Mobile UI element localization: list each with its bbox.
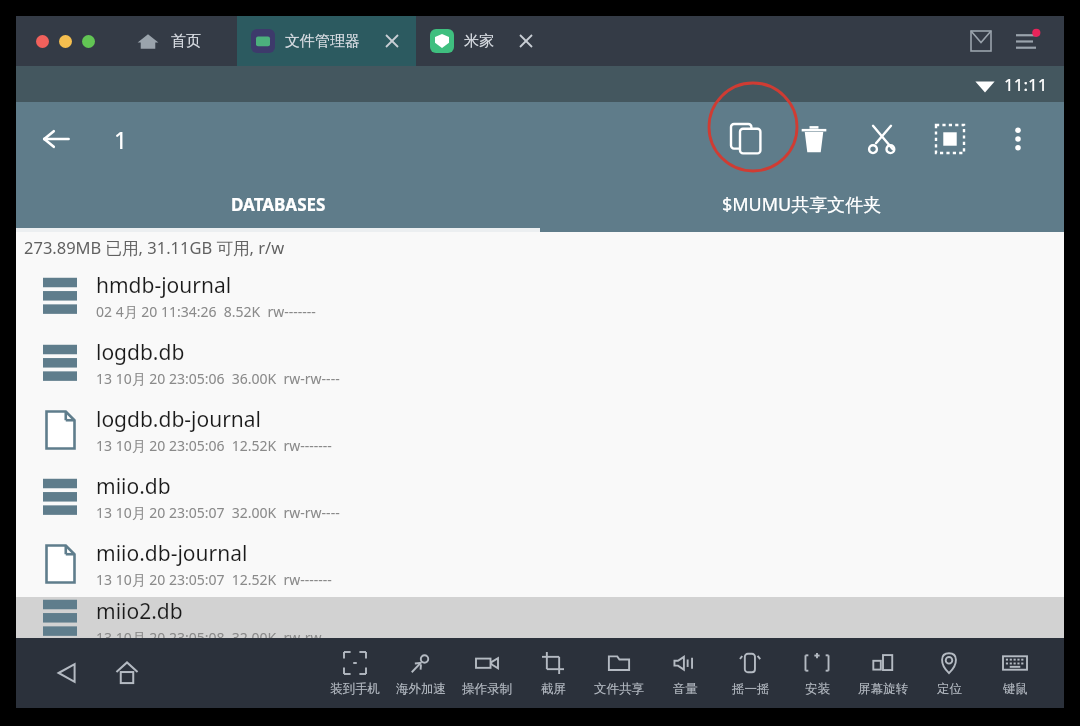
staticText: 13 10月 20 23:05:07 12.52K rw------- — [96, 570, 332, 589]
staticText: 02 4月 20 11:34:26 8.52K rw------- — [96, 302, 316, 321]
button[interactable]: Menu — [1010, 25, 1042, 57]
button[interactable]: 首页 — [127, 16, 209, 66]
button[interactable]: More options — [984, 105, 1052, 173]
button[interactable]: Back — [44, 650, 90, 696]
staticText: 键鼠 — [1003, 681, 1028, 697]
button[interactable]: Back — [30, 113, 82, 165]
button[interactable]: miio.db — [16, 463, 1064, 530]
staticText: $MUMU共享文件夹 — [722, 192, 882, 217]
staticText: 截屏 — [541, 681, 566, 697]
staticText: 首页 — [171, 32, 201, 51]
staticText: 13 10月 20 23:05:08 32.00K rw-rw---- — [96, 628, 340, 638]
staticText: 摇一摇 — [732, 681, 770, 697]
staticText: DATABASES — [231, 193, 326, 216]
button[interactable]: Cut — [848, 105, 916, 173]
staticText: 13 10月 20 23:05:06 12.52K rw------- — [96, 436, 332, 455]
button[interactable]: 文件管理器 — [237, 16, 416, 66]
staticText: hmdb-journal — [96, 271, 232, 300]
staticText: 屏幕旋转 — [858, 681, 908, 697]
button[interactable]: Close tab — [516, 31, 536, 51]
button[interactable]: $MUMU共享文件夹 — [540, 176, 1064, 232]
button[interactable] — [59, 35, 72, 48]
button[interactable]: 操作录制 — [454, 638, 520, 708]
button[interactable] — [36, 35, 49, 48]
staticText: 文件管理器 — [285, 32, 360, 51]
button[interactable]: Mail — [966, 26, 996, 56]
button[interactable] — [82, 35, 95, 48]
staticText: logdb.db-journal — [96, 405, 262, 434]
staticText: 米家 — [464, 32, 494, 51]
button[interactable]: 米家 — [416, 16, 550, 66]
staticText: 273.89MB 已用, 31.11GB 可用, r/w — [24, 236, 285, 259]
button[interactable]: 摇一摇 — [718, 638, 784, 708]
button[interactable]: logdb.db — [16, 329, 1064, 396]
staticText: 定位 — [937, 681, 962, 697]
button[interactable]: 音量 — [652, 638, 718, 708]
staticText: 1 — [114, 124, 128, 155]
button[interactable]: 键鼠 — [982, 638, 1048, 708]
staticText: 操作录制 — [462, 681, 512, 697]
staticText: 11:11 — [1004, 73, 1048, 96]
staticText: 13 10月 20 23:05:06 36.00K rw-rw---- — [96, 369, 340, 388]
staticText: 海外加速 — [396, 681, 446, 697]
button[interactable]: miio2.db — [16, 597, 1064, 638]
staticText: miio.db — [96, 472, 171, 501]
staticText: 13 10月 20 23:05:07 32.00K rw-rw---- — [96, 503, 340, 522]
button[interactable]: hmdb-journal — [16, 262, 1064, 329]
button[interactable]: 截屏 — [520, 638, 586, 708]
button[interactable]: 定位 — [916, 638, 982, 708]
button[interactable]: 安装 — [784, 638, 850, 708]
button[interactable]: 屏幕旋转 — [850, 638, 916, 708]
staticText: 音量 — [673, 681, 698, 697]
button[interactable]: DATABASES — [16, 176, 540, 232]
button[interactable]: logdb.db-journal — [16, 396, 1064, 463]
button[interactable]: 文件共享 — [586, 638, 652, 708]
button[interactable]: 海外加速 — [388, 638, 454, 708]
button[interactable]: Close tab — [382, 31, 402, 51]
staticText: logdb.db — [96, 338, 185, 367]
staticText: 文件共享 — [594, 681, 644, 697]
button[interactable]: miio.db-journal — [16, 530, 1064, 597]
button[interactable]: Delete — [780, 105, 848, 173]
staticText: 安装 — [805, 681, 830, 697]
staticText: miio2.db — [96, 597, 183, 626]
staticText: miio.db-journal — [96, 539, 248, 568]
button[interactable]: 装到手机 — [322, 638, 388, 708]
button[interactable]: Copy — [712, 105, 780, 173]
staticText: 装到手机 — [330, 681, 380, 697]
button[interactable]: Select all — [916, 105, 984, 173]
button[interactable]: Home — [104, 650, 150, 696]
